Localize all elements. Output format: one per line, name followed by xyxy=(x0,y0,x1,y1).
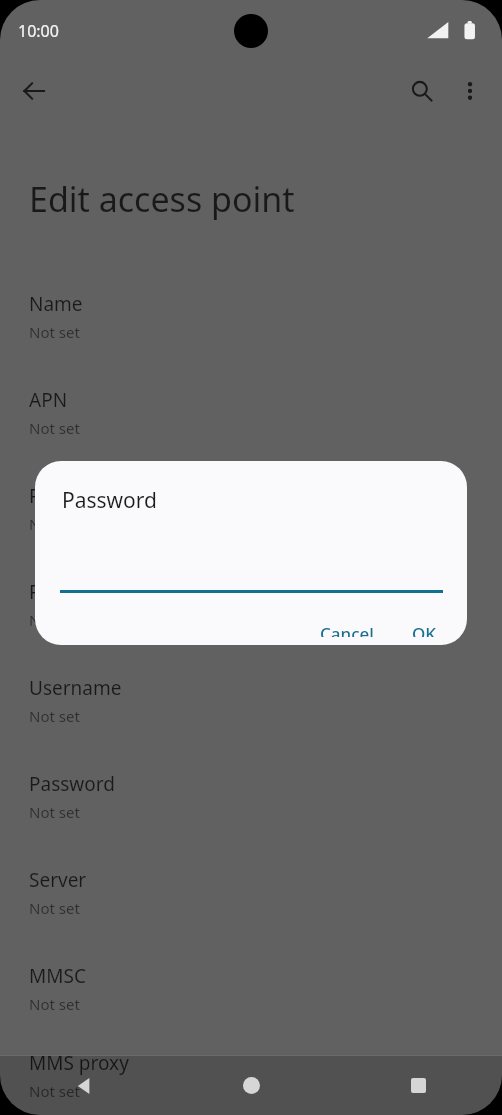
staticText: Password xyxy=(62,486,157,515)
staticText: MMS proxy xyxy=(29,1050,129,1076)
button[interactable]: Proxy xyxy=(0,460,502,556)
button[interactable]: Search xyxy=(398,67,446,115)
button[interactable]: MMS proxy xyxy=(0,1036,502,1115)
staticText: Port xyxy=(29,579,67,605)
button[interactable]: Name xyxy=(0,268,502,364)
button[interactable]: Back xyxy=(10,67,58,115)
button[interactable]: Port xyxy=(0,556,502,652)
staticText: Not set xyxy=(29,994,80,1014)
staticText: Not set xyxy=(29,1081,80,1101)
button[interactable] xyxy=(60,559,443,593)
button[interactable]: Password xyxy=(0,748,502,844)
staticText: Not set xyxy=(29,706,80,726)
staticText: Not set xyxy=(29,514,80,534)
button[interactable]: APN xyxy=(0,364,502,460)
button[interactable]: MMSC xyxy=(0,940,502,1036)
button[interactable]: Username xyxy=(0,652,502,748)
staticText: Username xyxy=(29,675,122,701)
staticText: Not set xyxy=(29,418,80,438)
staticText: Cancel xyxy=(320,622,374,637)
staticText: Not set xyxy=(29,322,80,342)
staticText: APN xyxy=(29,387,68,413)
button[interactable]: Cancel xyxy=(308,614,386,645)
button[interactable]: Home xyxy=(168,1056,335,1115)
staticText: 10:00 xyxy=(18,20,59,42)
staticText: Name xyxy=(29,291,83,317)
staticText: Not set xyxy=(29,898,80,918)
staticText: Not set xyxy=(29,610,80,630)
staticText: Password xyxy=(29,771,115,797)
button[interactable]: Server xyxy=(0,844,502,940)
staticText: Not set xyxy=(29,802,80,822)
button[interactable]: Back xyxy=(0,1056,168,1115)
staticText: MMSC xyxy=(29,963,86,989)
staticText: Server xyxy=(29,867,87,893)
staticText: Proxy xyxy=(29,483,79,509)
staticText: Edit access point xyxy=(29,176,295,222)
button[interactable]: More options xyxy=(446,67,494,115)
staticText: OK xyxy=(412,622,437,637)
button[interactable]: Recent apps xyxy=(335,1056,502,1115)
button[interactable]: OK xyxy=(400,614,449,645)
